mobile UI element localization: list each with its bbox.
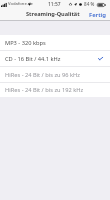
button[interactable]: CD - 16 Bit / 44.1 kHz	[0, 51, 110, 67]
staticText: MP3 - 320 kbps	[5, 39, 46, 47]
staticText: HiRes - 24 Bit / bis zu 96 kHz	[5, 71, 80, 79]
other: Ausgewählt	[98, 57, 103, 60]
staticText: HiRes - 24 Bit / bis zu 192 kHz	[5, 86, 84, 94]
button[interactable]: HiRes - 24 Bit / bis zu 192 kHz	[0, 83, 110, 97]
staticText: 11:57	[48, 1, 61, 8]
staticText: Streaming-Qualität	[26, 10, 80, 18]
staticText: CD - 16 Bit / 44.1 kHz	[5, 55, 61, 63]
staticText: Vodafone.de	[8, 1, 33, 7]
staticText: 84 %	[84, 1, 95, 7]
button[interactable]: Fertig	[84, 11, 110, 21]
button[interactable]: MP3 - 320 kbps	[0, 35, 110, 51]
staticText: Fertig	[89, 11, 106, 19]
button[interactable]: HiRes - 24 Bit / bis zu 96 kHz	[0, 67, 110, 83]
